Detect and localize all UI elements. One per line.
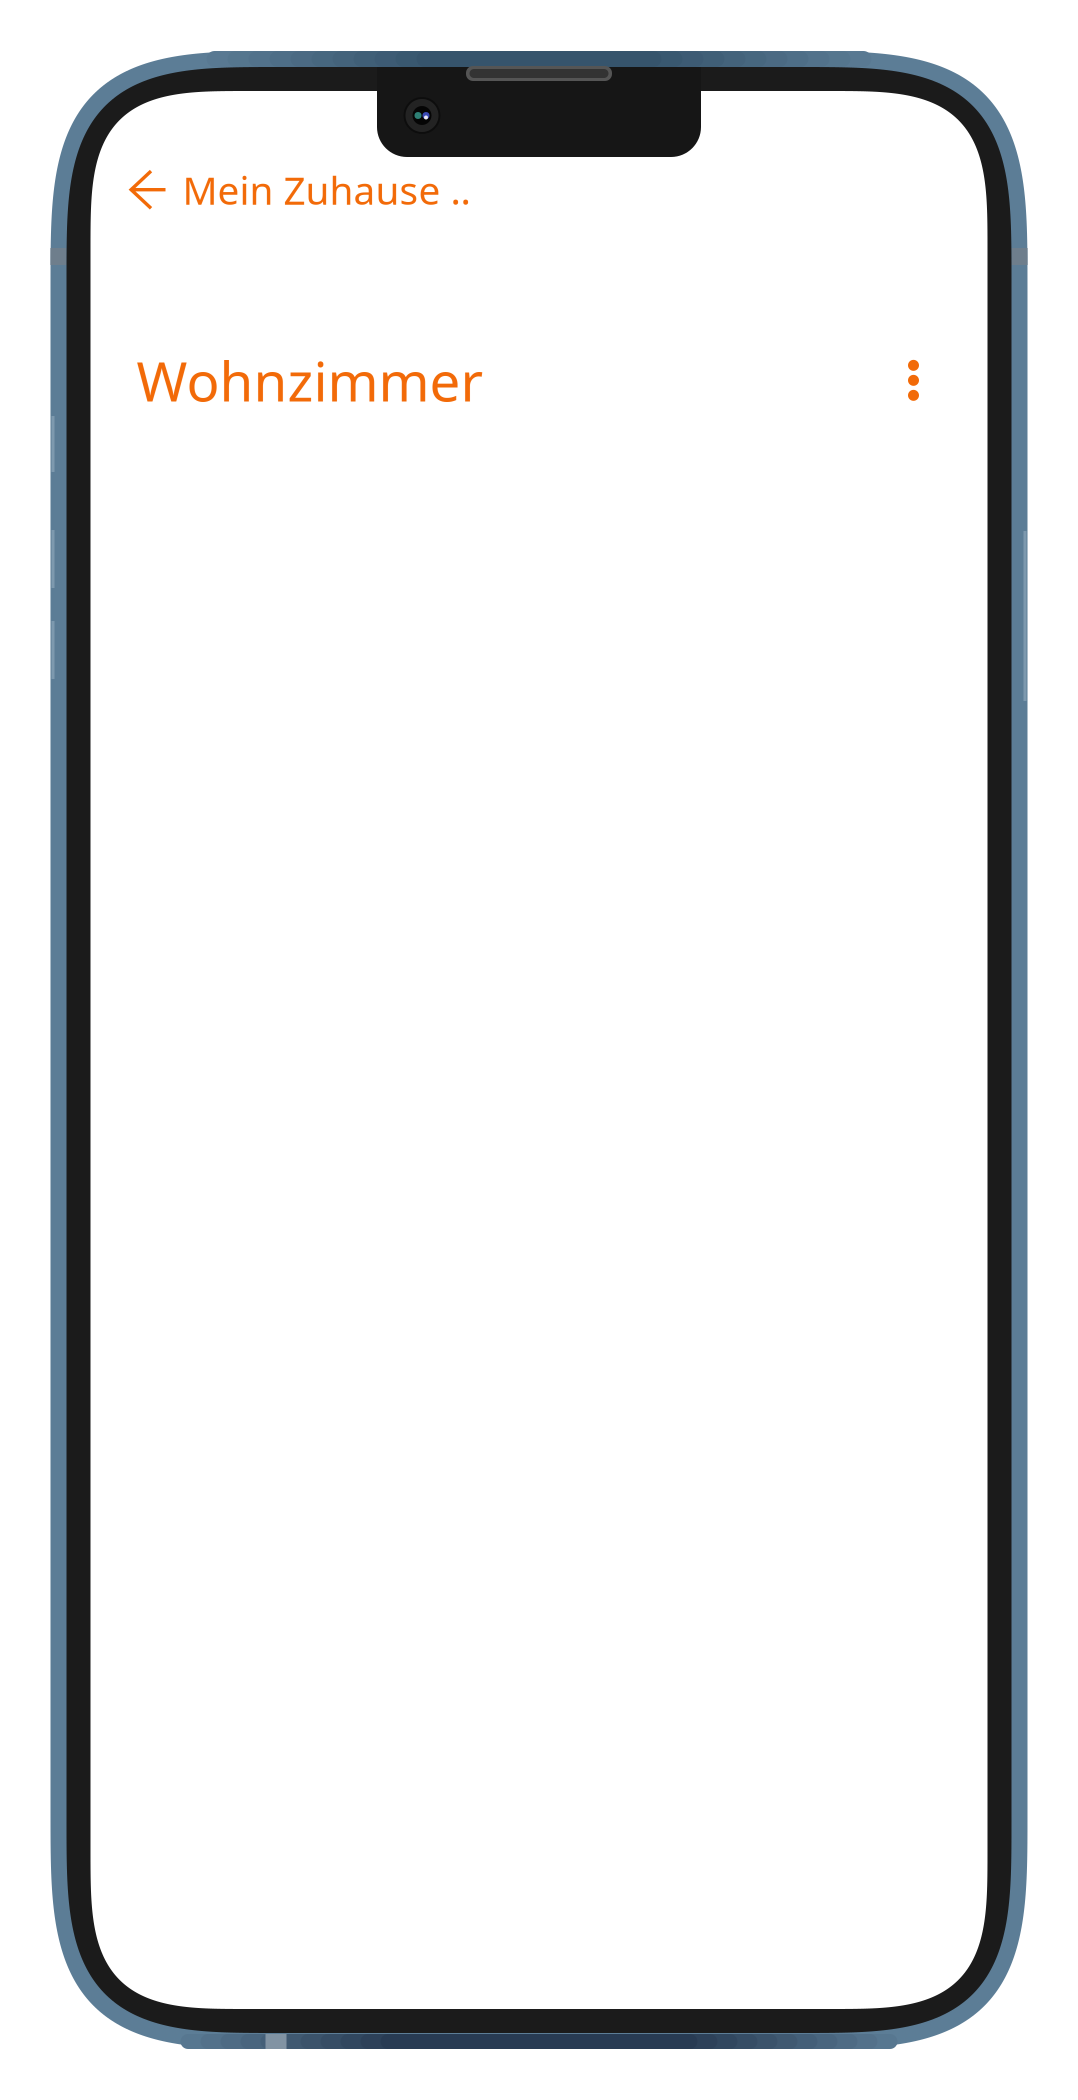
staticText: Mein Zuhause .. [182,164,470,215]
staticText: Wohnzimmer [136,344,483,417]
button[interactable]: Mehr Optionen [876,336,950,424]
button[interactable]: Mein Zuhause .. [90,154,496,229]
